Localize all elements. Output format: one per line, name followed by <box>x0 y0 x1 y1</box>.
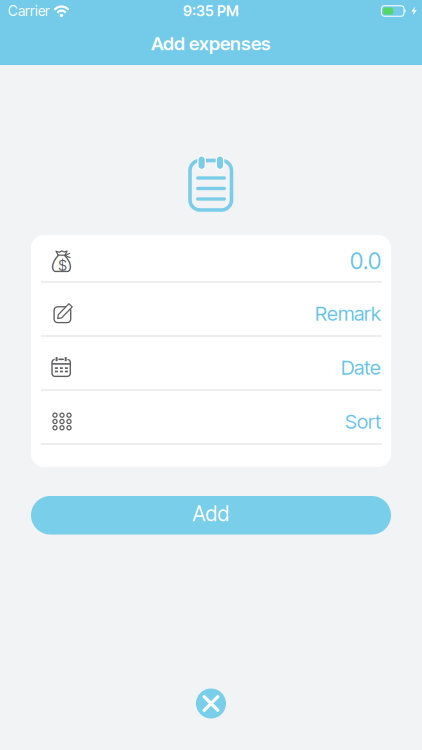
staticText: 0.0 <box>350 247 381 275</box>
staticText: $ <box>58 257 67 274</box>
staticText: Remark <box>315 301 381 326</box>
button[interactable]: Add <box>31 496 391 534</box>
button[interactable]: Remark <box>31 282 391 335</box>
staticText: 9:35 PM <box>183 2 239 20</box>
button[interactable]: $ <box>31 235 391 281</box>
staticText: Sort <box>345 409 381 434</box>
staticText: Carrier <box>8 2 50 19</box>
staticText: Add expenses <box>151 32 271 55</box>
button[interactable] <box>196 688 226 718</box>
staticText: Date <box>341 355 381 380</box>
staticText: Add <box>192 501 229 526</box>
button[interactable]: Sort <box>31 390 391 443</box>
button[interactable]: Date <box>31 336 391 389</box>
